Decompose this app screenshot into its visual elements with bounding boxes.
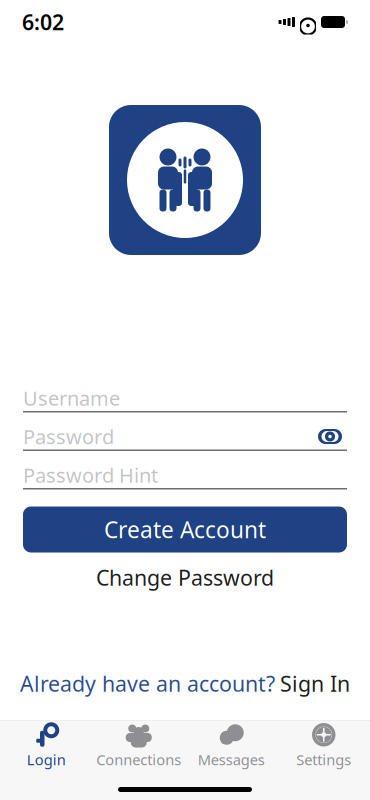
staticText: Password Hint [23,462,158,488]
staticText: Login [27,750,66,769]
button[interactable]: Login [0,721,92,771]
button[interactable]: Settings [277,721,370,771]
staticText: Connections [96,750,181,769]
button[interactable]: Change Password [96,562,274,592]
staticText: 6:02 [22,8,64,36]
button[interactable]: Messages [185,721,277,771]
button[interactable]: Create Account [23,506,347,552]
staticText: Sign In [280,669,350,698]
staticText: Change Password [96,563,274,592]
button[interactable]: Show password [313,423,347,449]
staticText: Settings [296,750,351,769]
staticText: Already have an account? [20,669,275,698]
staticText: Create Account [104,514,266,544]
button[interactable]: Already have an account? [20,669,350,697]
staticText: Password [23,423,114,450]
button[interactable]: Connections [92,721,185,771]
staticText: Username [23,385,120,411]
staticText: Messages [198,750,265,769]
